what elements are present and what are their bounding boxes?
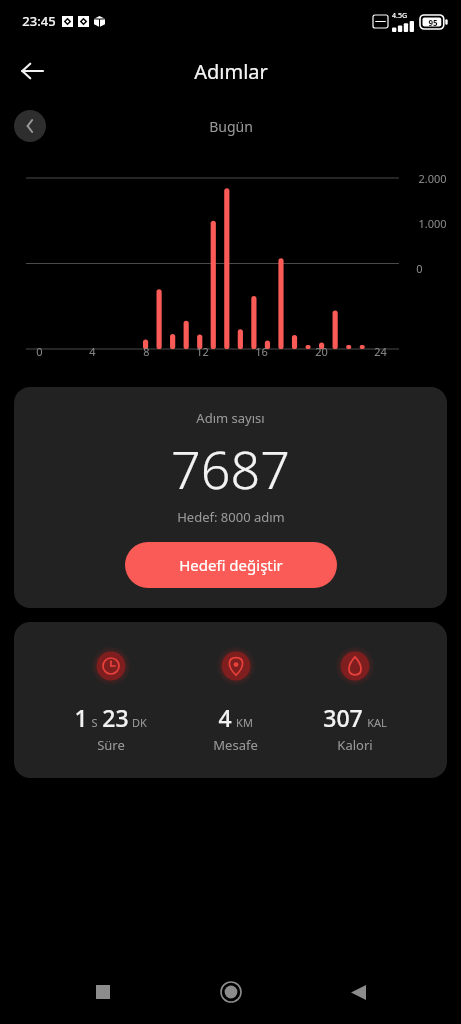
staticText: 12 [196, 344, 209, 359]
button[interactable]: Previous day [14, 110, 46, 142]
button[interactable]: Hedefi değiştir [125, 542, 337, 588]
button[interactable]: 4 [207, 646, 264, 754]
button[interactable]: 1 [68, 646, 153, 754]
staticText: 24 [374, 344, 387, 359]
button[interactable]: Back [334, 968, 382, 1016]
staticText: Adımlar [194, 58, 268, 85]
staticText: Bugün [209, 117, 253, 136]
staticText: 0 [36, 344, 43, 359]
staticText: 2.000 [418, 171, 447, 186]
staticText: 16 [255, 344, 268, 359]
staticText: 1.000 [418, 216, 447, 231]
button[interactable]: Home [207, 968, 255, 1016]
staticText: KAL [367, 715, 387, 730]
button[interactable]: Adım sayısı [14, 387, 447, 608]
staticText: 23:45 [22, 12, 56, 30]
staticText: Hedefi değiştir [179, 555, 283, 575]
staticText: Adım sayısı [196, 409, 265, 427]
staticText: 0 [416, 261, 423, 276]
button[interactable]: 307 [317, 646, 393, 754]
staticText: 307 [323, 702, 363, 733]
staticText: 4 [218, 702, 232, 733]
staticText: DK [132, 715, 147, 730]
staticText: Mesafe [213, 736, 258, 754]
staticText: S [91, 715, 98, 730]
staticText: 8 [143, 344, 150, 359]
staticText: 4.5G [392, 11, 407, 21]
staticText: Süre [97, 736, 125, 754]
staticText: Kalori [337, 736, 373, 754]
staticText: 23 [102, 702, 129, 733]
staticText: 20 [315, 344, 328, 359]
staticText: 95 [428, 17, 438, 28]
staticText: KM [236, 715, 253, 730]
button[interactable]: Back [8, 47, 56, 95]
staticText: Hedef: 8000 adım [177, 508, 285, 526]
staticText: 1 [74, 702, 88, 733]
button[interactable]: Recent apps [79, 968, 127, 1016]
staticText: 7687 [171, 433, 290, 504]
staticText: 4 [89, 344, 96, 359]
